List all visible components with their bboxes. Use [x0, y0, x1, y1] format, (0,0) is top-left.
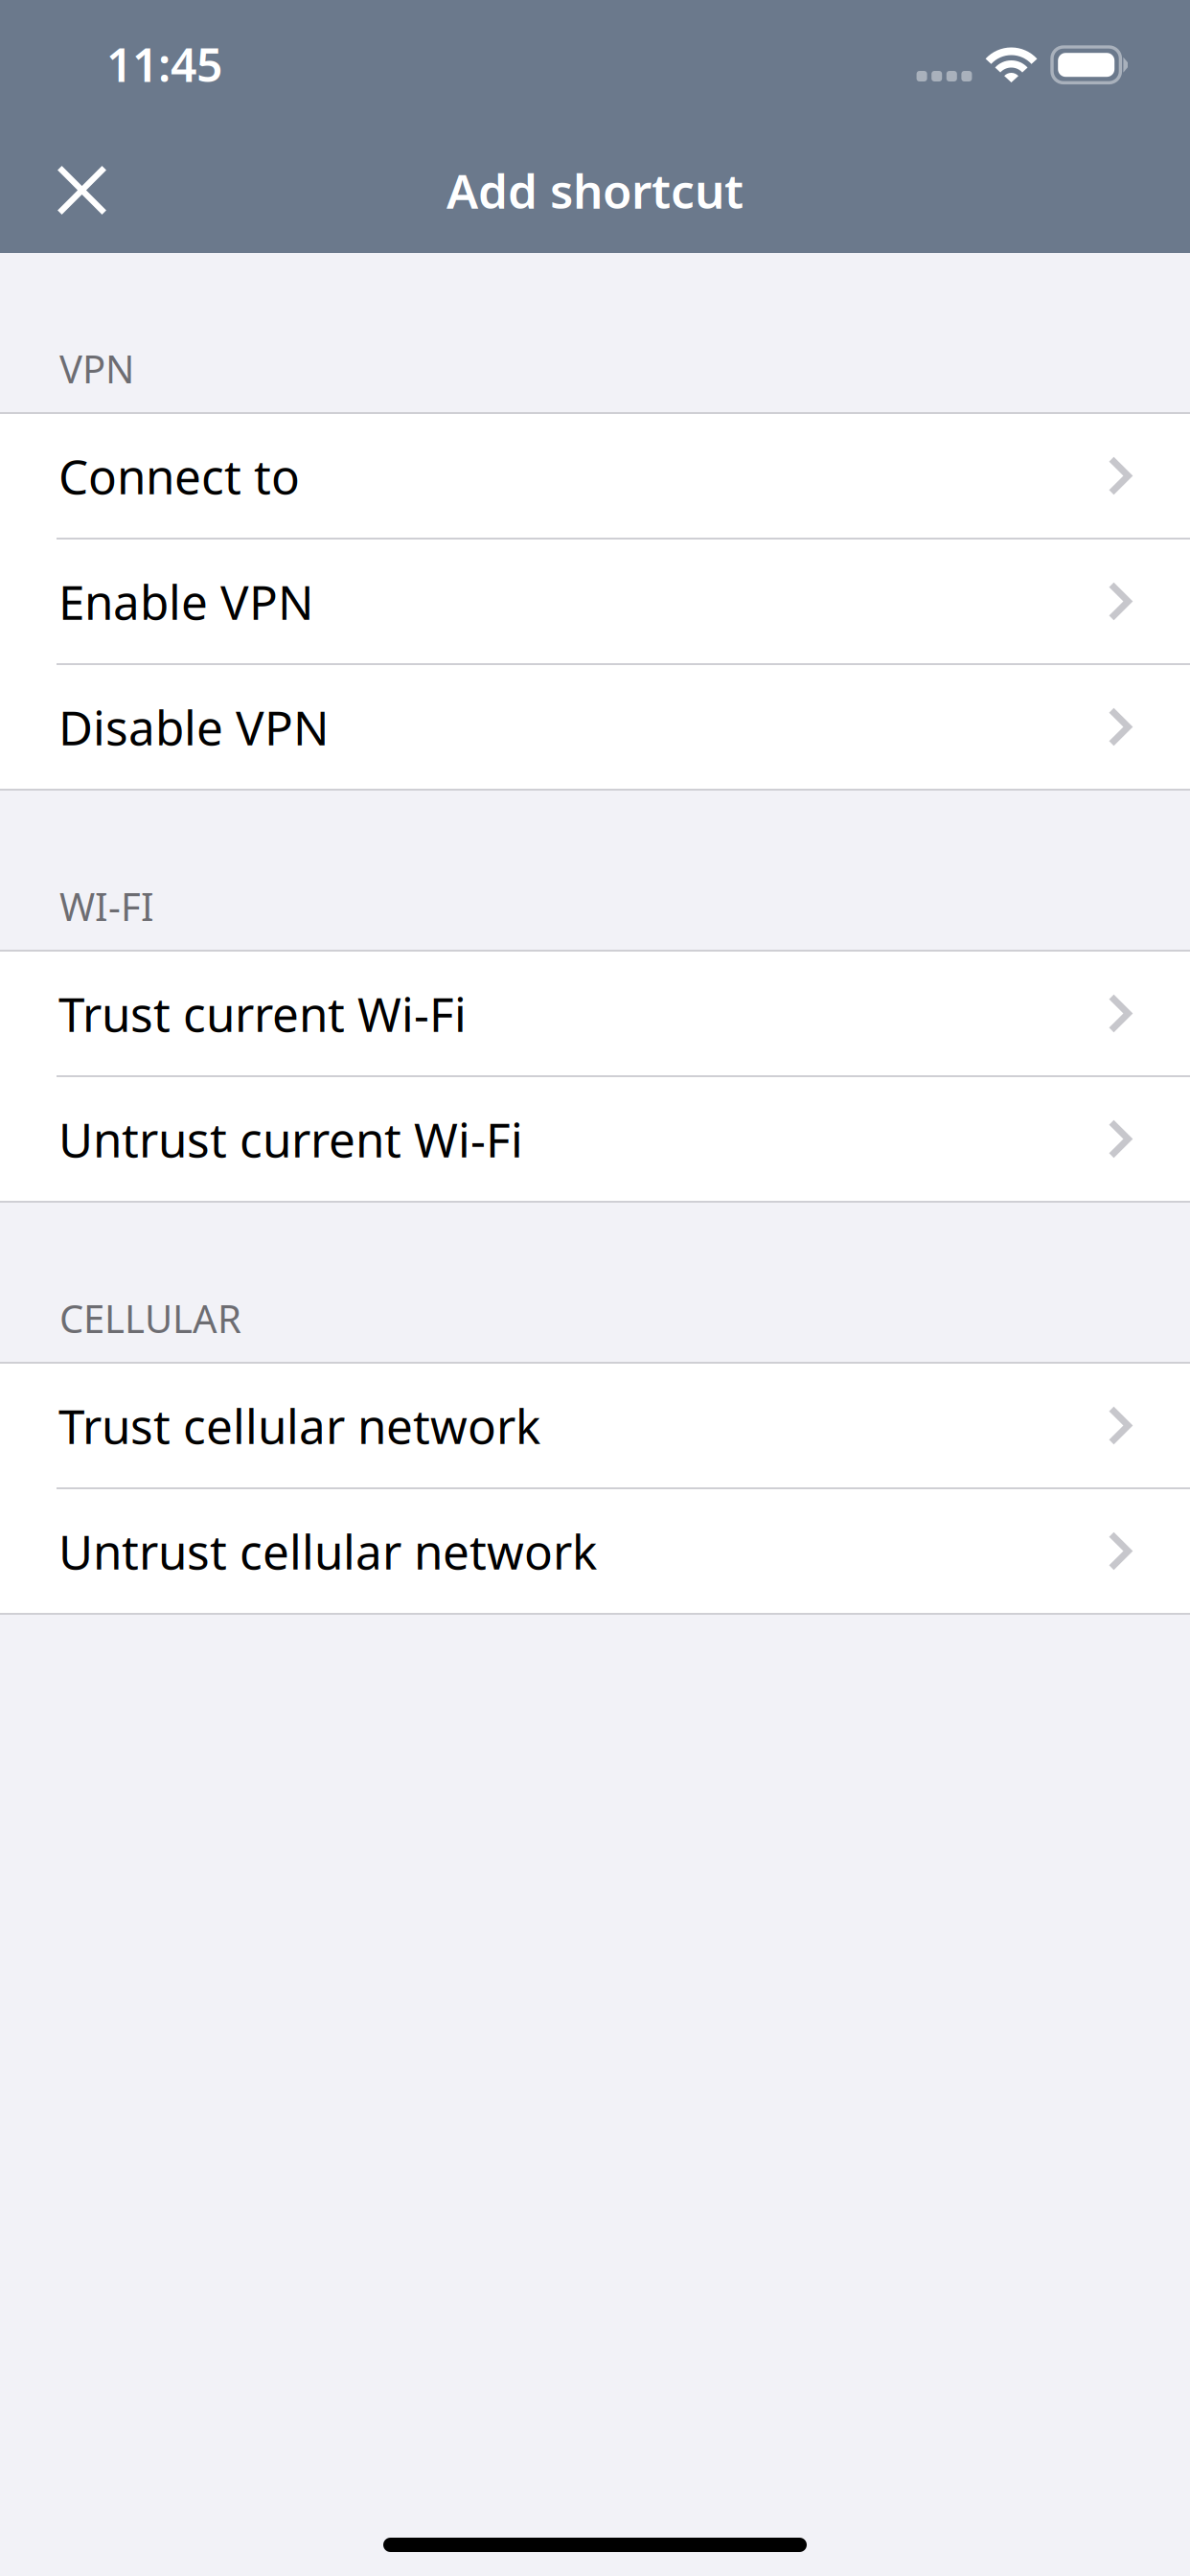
staticText: WI-FI — [59, 881, 154, 931]
staticText: Untrust cellular network — [58, 1520, 597, 1582]
staticText: CELLULAR — [59, 1293, 241, 1344]
staticText: Trust current Wi-Fi — [58, 982, 467, 1045]
staticText: Enable VPN — [58, 570, 313, 633]
staticText: Add shortcut — [446, 159, 744, 222]
staticText: 11:45 — [106, 34, 222, 95]
staticText: Connect to — [58, 444, 300, 507]
button[interactable]: Untrust cellular network — [0, 1489, 1190, 1613]
button[interactable]: Enable VPN — [0, 540, 1190, 663]
button[interactable]: Untrust current Wi-Fi — [0, 1077, 1190, 1201]
button[interactable]: Close — [0, 127, 150, 253]
button[interactable]: Trust current Wi-Fi — [0, 952, 1190, 1075]
button[interactable]: Trust cellular network — [0, 1364, 1190, 1487]
staticText: Untrust current Wi-Fi — [58, 1108, 523, 1170]
button[interactable]: Disable VPN — [0, 665, 1190, 789]
staticText: VPN — [59, 343, 134, 394]
button[interactable]: Connect to — [0, 414, 1190, 538]
staticText: Disable VPN — [58, 695, 329, 758]
staticText: Trust cellular network — [58, 1394, 540, 1457]
